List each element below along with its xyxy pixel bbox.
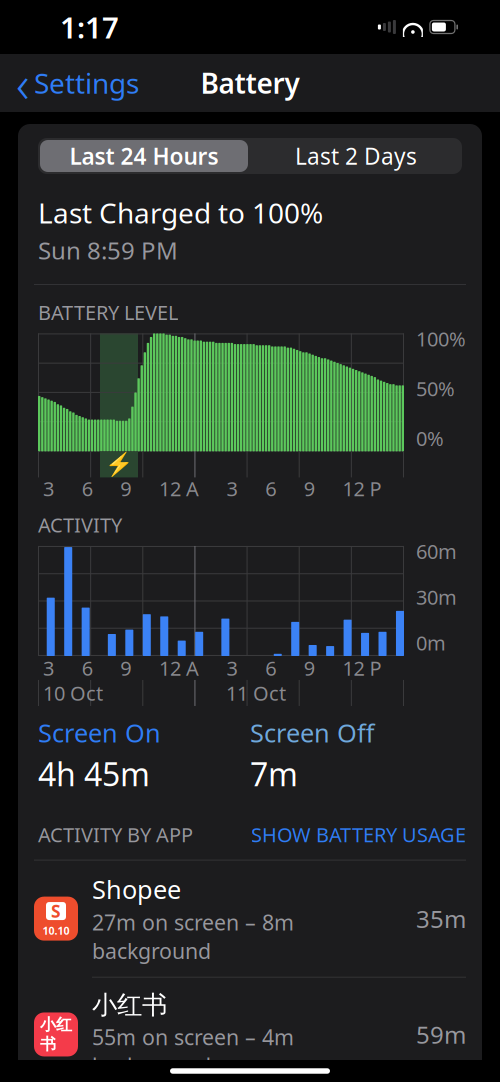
staticText: 12 P [342, 655, 381, 681]
staticText: 59m [416, 1018, 466, 1050]
button[interactable]: 小红书 [18, 978, 482, 1082]
staticText: 3 [226, 655, 237, 681]
staticText: ACTIVITY [38, 511, 122, 538]
staticText: 11 Oct [226, 680, 286, 706]
staticText: 9 [304, 655, 315, 681]
staticText: Settings [34, 64, 139, 102]
staticText: 50% [416, 375, 455, 402]
staticText: ⚡ [105, 451, 133, 477]
staticText: 9 [304, 475, 315, 502]
staticText: 4h 45m [38, 753, 150, 795]
staticText: 35m [416, 903, 466, 935]
staticText: Last Charged to 100% [38, 194, 323, 231]
staticText: BATTERY LEVEL [38, 299, 178, 325]
staticText: 1:17 [60, 7, 119, 46]
staticText: 100% [416, 325, 466, 352]
button[interactable]: SHOW BATTERY USAGE [251, 821, 466, 848]
button[interactable]: Last 24 Hours [38, 138, 250, 174]
staticText: Battery [200, 64, 299, 102]
staticText: 6 [265, 655, 276, 681]
button[interactable]: ‹ [6, 45, 149, 121]
staticText: SHOW BATTERY USAGE [251, 821, 466, 848]
staticText: 30m [416, 584, 457, 610]
staticText: 6 [82, 475, 93, 502]
button[interactable]: Last 2 Days [250, 138, 462, 174]
staticText: 9 [120, 475, 131, 502]
staticText: 9 [120, 655, 131, 681]
staticText: 6 [265, 475, 276, 502]
staticText: 3 [226, 475, 237, 502]
staticText: 60m [416, 538, 457, 565]
staticText: 12 A [159, 655, 199, 681]
staticText: Shopee [92, 872, 181, 906]
staticText: 10.10 [42, 923, 69, 938]
staticText: 12 P [342, 475, 381, 502]
staticText: 3 [43, 655, 54, 681]
staticText: 0m [416, 629, 446, 656]
staticText: 55m on screen – 4m background [92, 1023, 294, 1079]
staticText: 6 [82, 655, 93, 681]
staticText: ‹ [16, 49, 29, 117]
staticText: 12 A [159, 475, 199, 502]
staticText: Sun 8:59 PM [38, 234, 178, 266]
staticText: Screen Off [250, 716, 374, 750]
staticText: 0% [416, 425, 444, 451]
staticText: 小红书 [92, 990, 167, 1021]
staticText: Screen On [38, 716, 161, 750]
staticText: 3 [43, 475, 54, 502]
staticText: 小红书 [40, 1015, 72, 1054]
staticText: S [51, 899, 61, 922]
staticText: Last 24 Hours [69, 141, 218, 171]
staticText: Last 2 Days [295, 141, 417, 171]
button[interactable]: S [18, 860, 482, 978]
staticText: 27m on screen – 8m background [92, 908, 294, 965]
staticText: 7m [250, 753, 298, 795]
staticText: 10 Oct [43, 680, 103, 706]
staticText: ACTIVITY BY APP [38, 821, 193, 848]
